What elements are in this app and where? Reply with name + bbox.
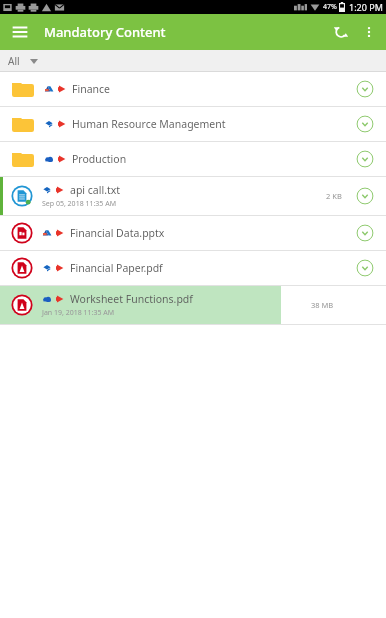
button[interactable]: More actions — [356, 80, 374, 98]
staticText: Financial Paper.pdf — [70, 261, 163, 275]
staticText: Mandatory Content — [44, 23, 166, 41]
staticText: Jan 19, 2018 11:35 AM — [42, 308, 115, 318]
button[interactable]: More actions — [356, 224, 374, 242]
button[interactable]: More actions — [356, 259, 374, 277]
button[interactable]: Financial Paper.pdf — [0, 251, 386, 285]
button[interactable]: Production — [0, 142, 386, 176]
staticText: Sep 05, 2018 11:35 AM — [42, 199, 116, 209]
staticText: Finance — [72, 82, 356, 96]
staticText: Production — [72, 152, 356, 166]
button[interactable]: More actions — [356, 150, 374, 168]
button[interactable]: Human Resource Management — [0, 107, 386, 141]
button[interactable]: Refresh — [326, 17, 356, 47]
button[interactable]: Open navigation drawer — [6, 18, 34, 46]
staticText: api call.txt — [70, 183, 121, 197]
button[interactable]: More actions — [356, 115, 374, 133]
button[interactable]: Finance — [0, 72, 386, 106]
button[interactable]: More options — [356, 19, 382, 45]
staticText: 38 MB — [311, 300, 334, 310]
staticText: 2 KB — [326, 191, 342, 201]
staticText: Financial Data.pptx — [70, 226, 165, 240]
staticText: Human Resource Management — [72, 117, 356, 131]
button[interactable]: More actions — [356, 187, 374, 205]
staticText: Worksheet Functions.pdf — [70, 292, 193, 306]
button[interactable]: api call.txt — [0, 177, 386, 215]
staticText: 47% — [323, 2, 337, 12]
button[interactable]: Financial Data.pptx — [0, 216, 386, 250]
button[interactable]: Worksheet Functions.pdf — [0, 286, 386, 324]
staticText: 1:20 PM — [349, 1, 383, 13]
staticText: All — [8, 54, 20, 68]
button[interactable]: All — [8, 54, 38, 68]
